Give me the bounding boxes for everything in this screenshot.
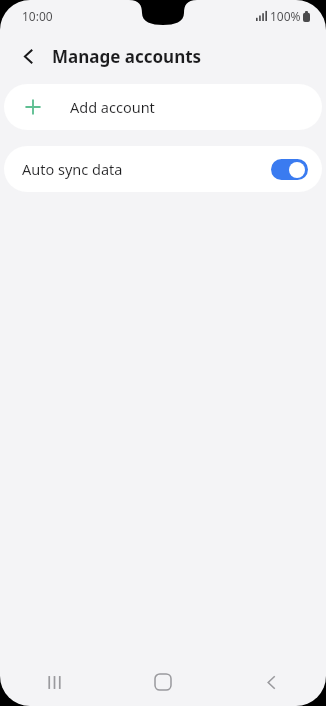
staticText: Auto sync data [22, 159, 271, 179]
staticText: Manage accounts [52, 45, 202, 68]
staticText: 100% [270, 8, 301, 24]
button[interactable]: Auto sync data [4, 146, 322, 192]
staticText: Add account [70, 97, 155, 117]
button[interactable]: Auto sync data toggle [271, 159, 308, 180]
button[interactable]: Add account [4, 84, 322, 130]
button[interactable]: Home [108, 658, 217, 706]
button[interactable]: Recent apps [0, 658, 108, 706]
staticText: 10:00 [22, 8, 53, 24]
button[interactable]: Back [217, 658, 326, 706]
button[interactable]: Back [10, 38, 46, 74]
